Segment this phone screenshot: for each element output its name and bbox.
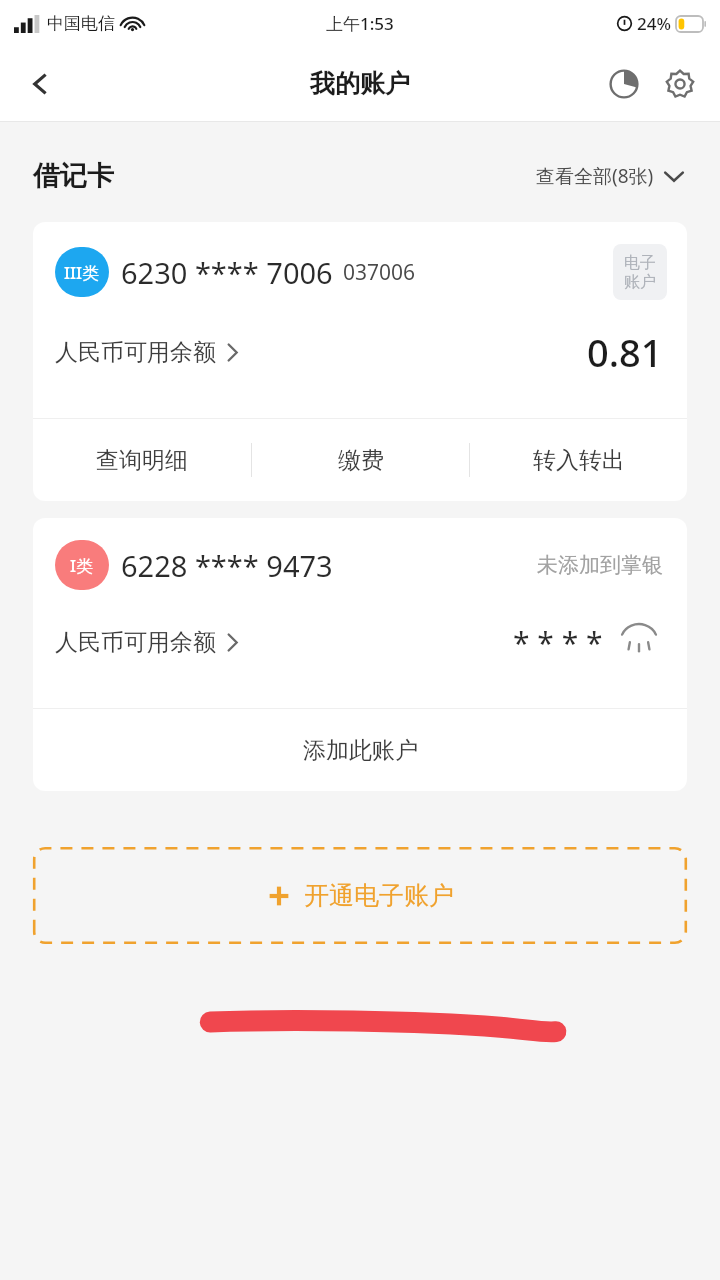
staticText: 人民币可用余额	[55, 338, 216, 367]
button[interactable]: 缴费	[252, 419, 469, 501]
staticText: 人民币可用余额	[55, 628, 216, 657]
button[interactable]: Settings	[654, 58, 706, 110]
staticText: III类	[64, 261, 100, 284]
staticText: 开通电子账户	[304, 880, 454, 911]
button[interactable]: 开通电子账户	[33, 847, 687, 944]
button[interactable]: 转入转出	[470, 419, 687, 501]
button[interactable]: 查看全部(8张)	[530, 157, 690, 195]
staticText: 查看全部(8张)	[536, 163, 654, 189]
staticText: 缴费	[338, 446, 384, 475]
button[interactable]: 添加此账户	[33, 709, 687, 791]
button[interactable]: Statistics	[598, 58, 650, 110]
staticText: 电子 账户	[624, 253, 656, 292]
button[interactable]: Show balance	[617, 620, 661, 664]
button[interactable]: III类	[33, 222, 687, 501]
staticText: 24%	[637, 12, 671, 35]
staticText: 未添加到掌银	[537, 552, 663, 578]
button[interactable]: I类	[33, 518, 687, 791]
button[interactable]: 人民币可用余额	[55, 338, 238, 367]
staticText: 6228 **** 9473	[121, 546, 333, 585]
staticText: 我的账户	[310, 68, 410, 99]
staticText: 上午1:53	[326, 12, 394, 35]
staticText: * * * *	[513, 622, 603, 663]
staticText: 0.81	[587, 326, 663, 378]
staticText: 查询明细	[96, 446, 188, 475]
staticText: 037006	[343, 258, 416, 287]
button[interactable]: 人民币可用余额	[55, 628, 238, 657]
button[interactable]: 查询明细	[33, 419, 251, 501]
staticText: 6230 **** 7006	[121, 253, 333, 292]
staticText: 借记卡	[33, 159, 114, 193]
staticText: 中国电信	[47, 13, 115, 34]
staticText: 添加此账户	[303, 736, 418, 765]
staticText: 转入转出	[533, 446, 625, 475]
button[interactable]: Back	[10, 54, 70, 114]
staticText: I类	[70, 554, 94, 577]
